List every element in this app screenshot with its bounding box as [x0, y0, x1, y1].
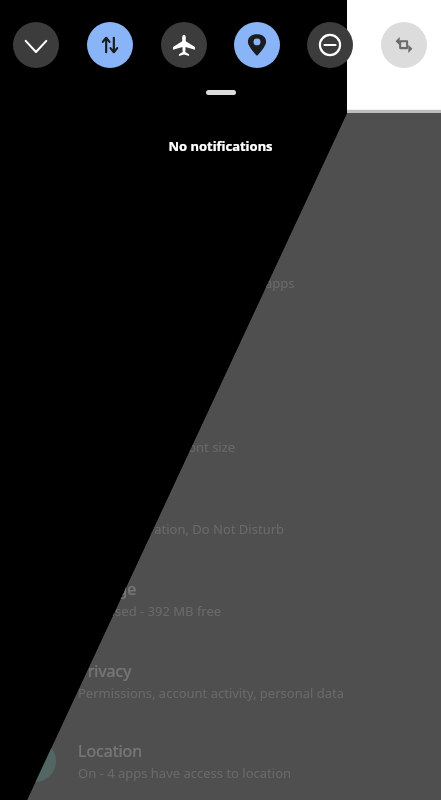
- staticText: Privacy: [78, 660, 132, 682]
- button[interactable]: Sound: [0, 476, 441, 558]
- button[interactable]: Wi-Fi: [13, 22, 59, 68]
- staticText: Wallpaper, sleep, font size: [78, 438, 236, 456]
- staticText: Assistant, recent apps, default apps: [78, 274, 295, 292]
- button[interactable]: Display: [0, 394, 441, 476]
- button[interactable]: Do Not Disturb: [307, 22, 353, 68]
- staticText: No notifications: [168, 137, 273, 155]
- button[interactable]: Location: [234, 22, 280, 68]
- button[interactable]: Connected devices: [0, 148, 441, 230]
- button[interactable]: Auto rotate: [381, 22, 427, 68]
- button[interactable]: Mobile data: [87, 22, 133, 68]
- staticText: Location: [78, 740, 143, 762]
- staticText: 90% used - 392 MB free: [78, 602, 222, 620]
- button[interactable]: Battery: [0, 312, 441, 394]
- button[interactable]: Airplane mode: [161, 22, 207, 68]
- staticText: Storage: [78, 578, 137, 600]
- button[interactable]: Location: [0, 722, 441, 800]
- button[interactable]: Apps & notifications: [0, 230, 441, 312]
- button[interactable]: Privacy: [0, 640, 441, 722]
- staticText: Permissions, account activity, personal …: [78, 684, 344, 702]
- button[interactable]: Storage: [0, 558, 441, 640]
- staticText: Volume, vibration, Do Not Disturb: [78, 520, 285, 538]
- staticText: On - 4 apps have access to location: [78, 764, 292, 782]
